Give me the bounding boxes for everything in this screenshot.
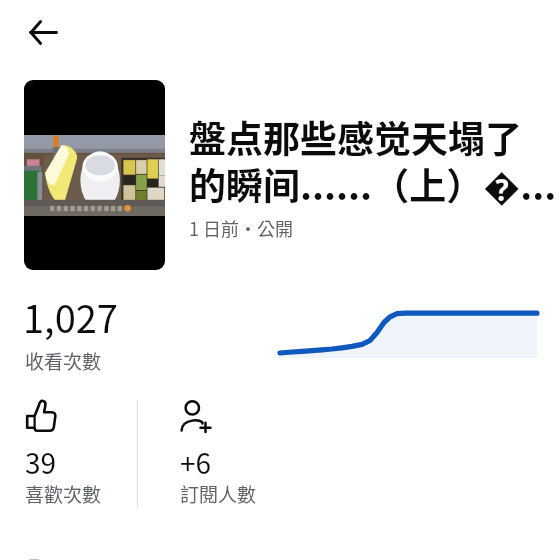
button[interactable]: 39 bbox=[25, 399, 137, 509]
button[interactable]: Comments bbox=[25, 556, 137, 560]
staticText: +6 bbox=[180, 442, 212, 483]
button[interactable]: +6 bbox=[180, 399, 292, 509]
button[interactable]: 1,027 bbox=[23, 289, 118, 344]
button[interactable]: Back bbox=[13, 2, 73, 62]
staticText: 訂閱人數 bbox=[180, 480, 257, 508]
button[interactable] bbox=[24, 80, 165, 270]
staticText: 39 bbox=[25, 442, 57, 483]
staticText: 1,027 bbox=[23, 289, 118, 344]
staticText: 喜歡次數 bbox=[25, 480, 102, 508]
staticText: 1 日前・公開 bbox=[189, 215, 294, 241]
staticText: 收看次數 bbox=[25, 347, 102, 375]
staticText: 盤点那些感觉天塌了 的瞬间......（上）�... bbox=[189, 110, 557, 210]
